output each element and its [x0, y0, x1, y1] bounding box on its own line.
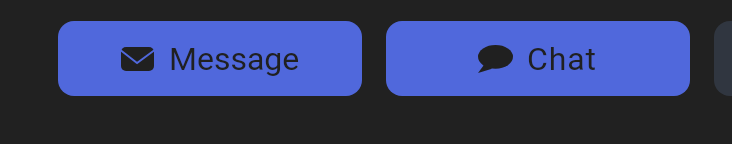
staticText: Chat: [527, 40, 597, 78]
button[interactable]: Chat: [386, 21, 690, 96]
staticText: Message: [169, 40, 300, 78]
button[interactable]: Message: [58, 21, 362, 96]
button[interactable]: Video call: [714, 21, 732, 96]
